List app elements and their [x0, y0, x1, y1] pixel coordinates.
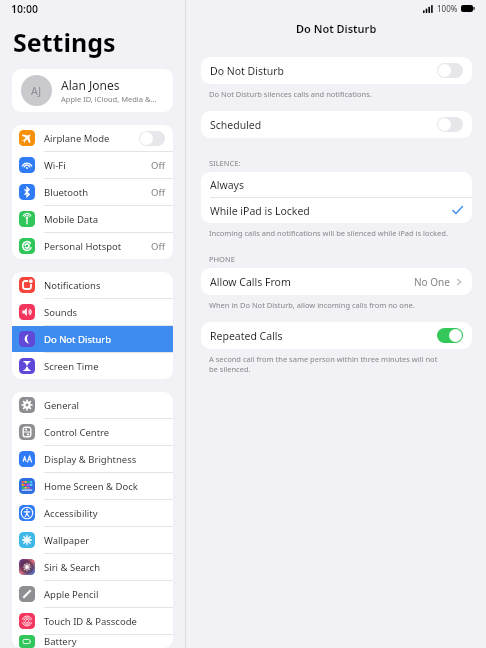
staticText: When in Do Not Disturb, allow incoming c… [209, 300, 415, 310]
staticText: Settings [13, 25, 116, 59]
staticText: Mobile Data [44, 213, 165, 226]
staticText: Scheduled [210, 118, 437, 132]
staticText: While iPad is Locked [210, 204, 452, 218]
staticText: No One [414, 275, 450, 289]
button[interactable]: Always [201, 172, 472, 197]
button[interactable]: Do Not Disturb [12, 326, 173, 352]
button[interactable]: Scheduled [201, 111, 472, 138]
staticText: Sounds [44, 306, 165, 319]
staticText: Incoming calls and notifications will be… [209, 228, 448, 238]
button[interactable]: Wi-Fi [12, 152, 173, 178]
button[interactable]: Notifications [12, 272, 173, 298]
button[interactable]: Switch off [437, 117, 463, 132]
staticText: Off [151, 186, 165, 199]
staticText: Do Not Disturb silences calls and notifi… [209, 89, 372, 99]
staticText: Accessibility [44, 507, 165, 520]
button[interactable]: Repeated Calls [201, 322, 472, 349]
button[interactable]: Bluetooth [12, 179, 173, 205]
button[interactable]: Display & Brightness [12, 446, 173, 472]
button[interactable]: Touch ID & Passcode [12, 608, 173, 634]
button[interactable]: Switch off [437, 63, 463, 78]
staticText: Do Not Disturb [44, 333, 165, 346]
staticText: 10:00 [11, 2, 38, 16]
staticText: Do Not Disturb [296, 21, 377, 36]
staticText: Apple ID, iCloud, Media &… [61, 94, 157, 104]
button[interactable]: Apple Pencil [12, 581, 173, 607]
button[interactable]: Siri & Search [12, 554, 173, 580]
button[interactable]: Mobile Data [12, 206, 173, 232]
button[interactable]: General [12, 392, 173, 418]
staticText: Off [151, 240, 165, 253]
staticText: Touch ID & Passcode [44, 615, 165, 628]
staticText: Home Screen & Dock [44, 480, 165, 493]
staticText: Do Not Disturb [210, 64, 437, 78]
staticText: Airplane Mode [44, 132, 139, 145]
button[interactable]: Accessibility [12, 500, 173, 526]
button[interactable]: Do Not Disturb [201, 57, 472, 84]
staticText: Off [151, 159, 165, 172]
staticText: PHONE [209, 254, 235, 264]
button[interactable]: While iPad is Locked [201, 198, 472, 223]
staticText: Always [210, 178, 463, 192]
staticText: Display & Brightness [44, 453, 165, 466]
staticText: Alan Jones [61, 77, 120, 93]
button[interactable]: Wallpaper [12, 527, 173, 553]
staticText: Control Centre [44, 426, 165, 439]
button[interactable]: Allow Calls From [201, 268, 472, 295]
staticText: Siri & Search [44, 561, 165, 574]
staticText: Notifications [44, 279, 165, 292]
staticText: Repeated Calls [210, 329, 437, 343]
staticText: AJ [31, 84, 42, 98]
button[interactable]: Switch on [437, 328, 463, 343]
button[interactable]: Switch off [139, 131, 165, 146]
button[interactable]: Sounds [12, 299, 173, 325]
staticText: Screen Time [44, 360, 165, 373]
button[interactable]: Personal Hotspot [12, 233, 173, 259]
staticText: General [44, 399, 165, 412]
staticText: Bluetooth [44, 186, 151, 199]
staticText: Wi-Fi [44, 159, 151, 172]
button[interactable]: Screen Time [12, 353, 173, 379]
button[interactable]: Home Screen & Dock [12, 473, 173, 499]
staticText: Personal Hotspot [44, 240, 151, 253]
button[interactable]: Control Centre [12, 419, 173, 445]
staticText: 100% [437, 3, 458, 14]
staticText: SILENCE: [209, 158, 241, 168]
staticText: Allow Calls From [210, 275, 414, 289]
button[interactable]: Airplane Mode [12, 125, 173, 151]
button[interactable]: AJ [12, 69, 173, 112]
staticText: Wallpaper [44, 534, 165, 547]
staticText: Battery [44, 635, 165, 648]
staticText: Apple Pencil [44, 588, 165, 601]
button[interactable]: Battery [12, 635, 173, 648]
staticText: A second call from the same person withi… [209, 354, 438, 374]
